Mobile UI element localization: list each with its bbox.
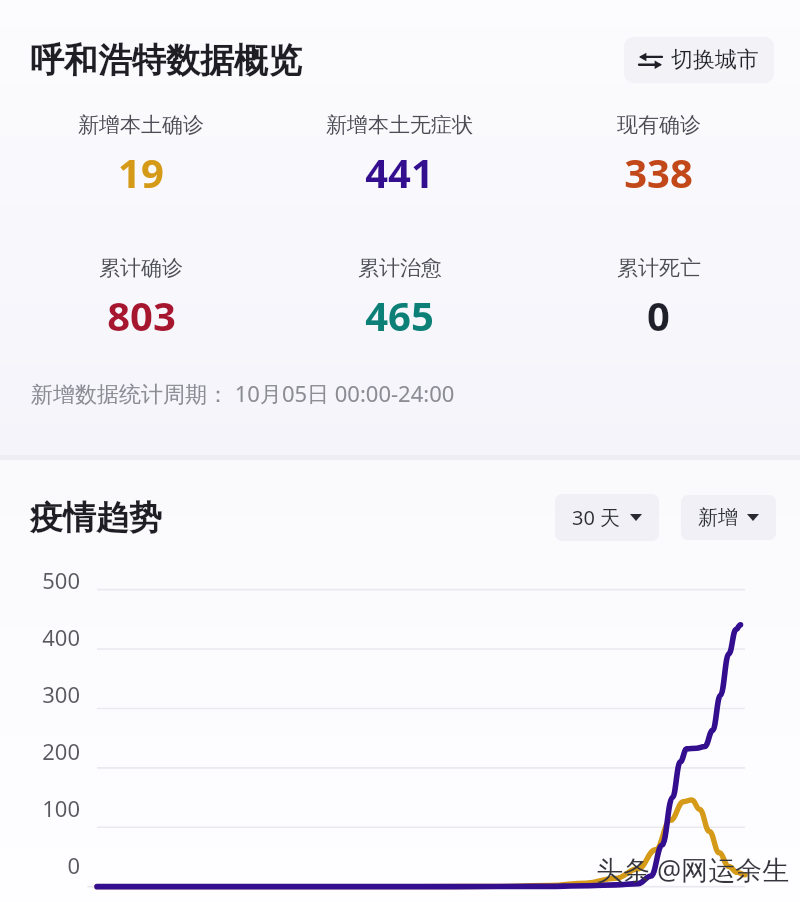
button[interactable]: 30 天 <box>555 494 659 541</box>
button[interactable]: 新增 <box>681 495 776 540</box>
staticText: 头条 @网运余生 <box>596 851 790 888</box>
staticText: 19 <box>118 145 164 199</box>
staticText: 338 <box>624 145 693 199</box>
staticText: 803 <box>107 288 176 342</box>
staticText: 疫情趋势 <box>30 497 162 539</box>
staticText: 400 <box>0 622 80 652</box>
staticText: 累计死亡 <box>617 255 701 281</box>
other: 切换城市 <box>639 52 662 69</box>
button[interactable]: 新增本土确诊 <box>12 112 270 199</box>
staticText: 累计确诊 <box>99 255 183 281</box>
staticText: 新增数据统计周期： 10月05日 00:00-24:00 <box>31 378 455 408</box>
button[interactable]: 现有确诊 <box>529 112 788 199</box>
staticText: 新增本土无症状 <box>326 112 473 138</box>
staticText: 465 <box>365 288 434 342</box>
button[interactable]: 累计确诊 <box>12 255 270 342</box>
staticText: 新增本土确诊 <box>78 112 204 138</box>
staticText: 200 <box>0 736 80 766</box>
staticText: 0 <box>647 288 670 342</box>
staticText: 累计治愈 <box>358 255 442 281</box>
button[interactable]: 累计治愈 <box>270 255 529 342</box>
staticText: 100 <box>0 793 80 823</box>
staticText: 新增 <box>698 505 738 530</box>
button[interactable]: 累计死亡 <box>529 255 788 342</box>
staticText: 441 <box>365 145 434 199</box>
staticText: 300 <box>0 679 80 709</box>
staticText: 0 <box>0 850 80 880</box>
staticText: 切换城市 <box>671 46 759 74</box>
staticText: 500 <box>0 565 80 595</box>
button[interactable]: 新增本土无症状 <box>270 112 529 199</box>
staticText: 30 天 <box>572 504 621 531</box>
staticText: 现有确诊 <box>617 112 701 138</box>
staticText: 呼和浩特数据概览 <box>30 39 302 82</box>
button[interactable]: 切换城市 <box>624 37 774 83</box>
